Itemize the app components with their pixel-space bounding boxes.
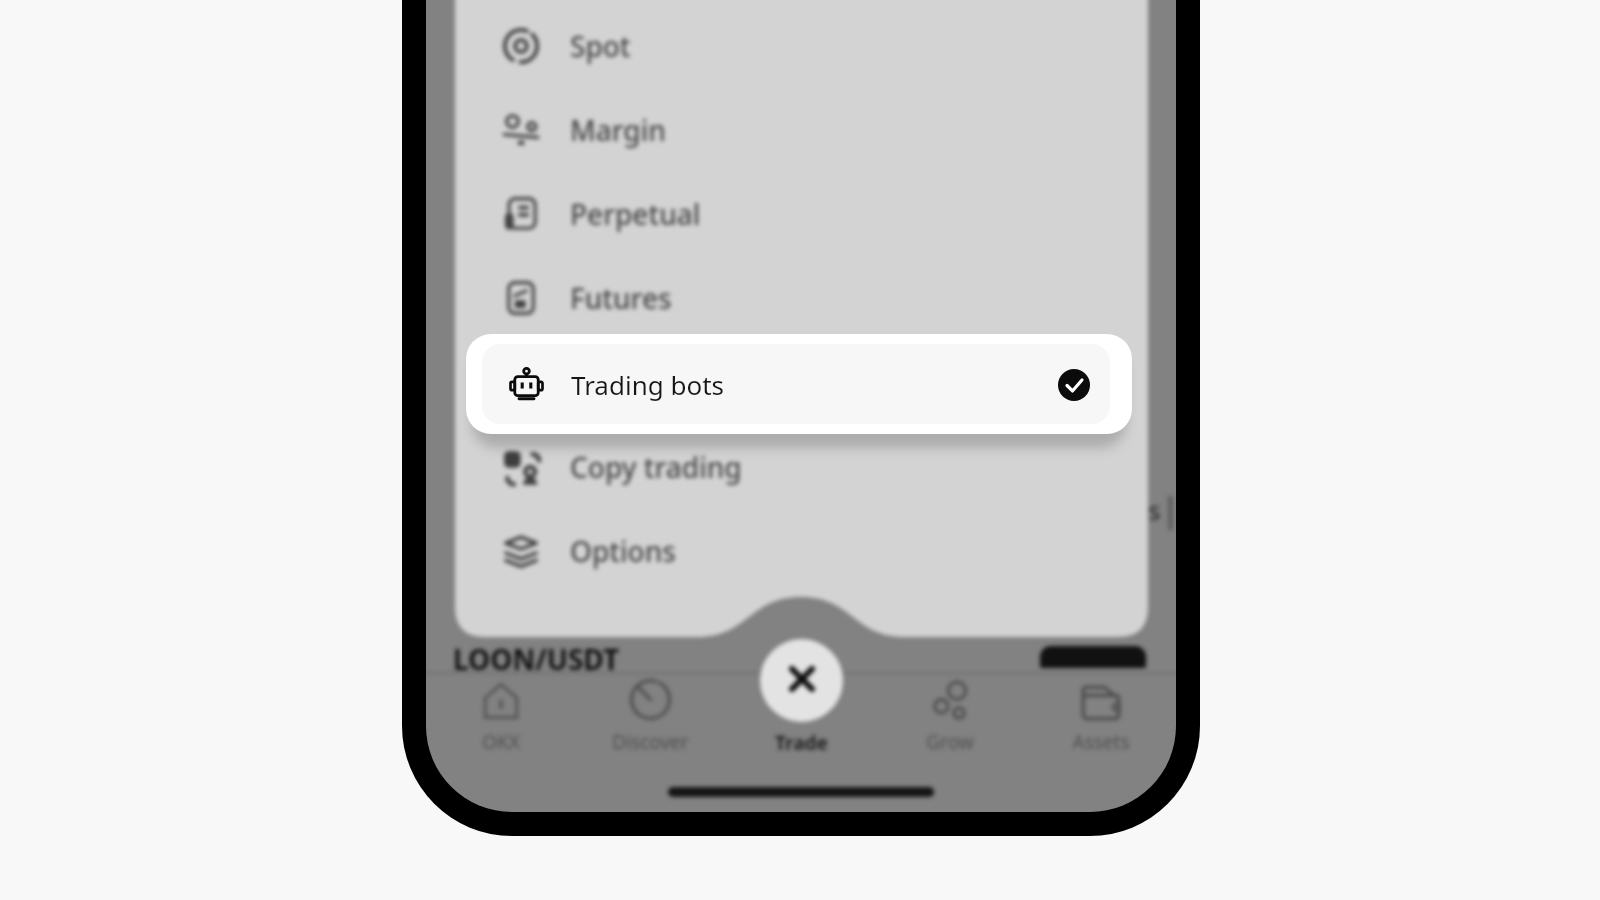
staticText: LOON/USDT bbox=[453, 640, 620, 678]
staticText: Copy trading bbox=[570, 448, 742, 486]
staticText: OKX bbox=[482, 729, 520, 755]
button[interactable]: Margin bbox=[455, 88, 1148, 172]
button[interactable]: Copy trading bbox=[455, 425, 1148, 509]
button[interactable]: Close trade menu bbox=[760, 639, 843, 722]
button[interactable]: Trading bots bbox=[466, 334, 1132, 434]
staticText: s bbox=[1148, 492, 1161, 527]
button[interactable]: Futures bbox=[455, 256, 1148, 340]
button[interactable]: Perpetual bbox=[455, 172, 1148, 256]
staticText: Assets bbox=[1072, 729, 1130, 755]
staticText: Trading bots bbox=[571, 367, 725, 402]
button[interactable]: Grow bbox=[880, 676, 1020, 752]
staticText: Futures bbox=[570, 279, 672, 317]
staticText: Discover bbox=[612, 729, 689, 755]
button[interactable]: OKX bbox=[431, 676, 571, 752]
staticText: Trade bbox=[775, 730, 828, 756]
button[interactable]: Options bbox=[455, 509, 1148, 593]
button[interactable]: Discover bbox=[580, 676, 720, 752]
staticText: Perpetual bbox=[570, 195, 701, 233]
staticText: Margin bbox=[570, 111, 666, 149]
staticText: Options bbox=[570, 532, 676, 570]
button[interactable]: Assets bbox=[1031, 676, 1171, 752]
staticText: Spot bbox=[570, 27, 631, 65]
button[interactable]: Spot bbox=[455, 4, 1148, 88]
staticText: Grow bbox=[926, 729, 974, 755]
